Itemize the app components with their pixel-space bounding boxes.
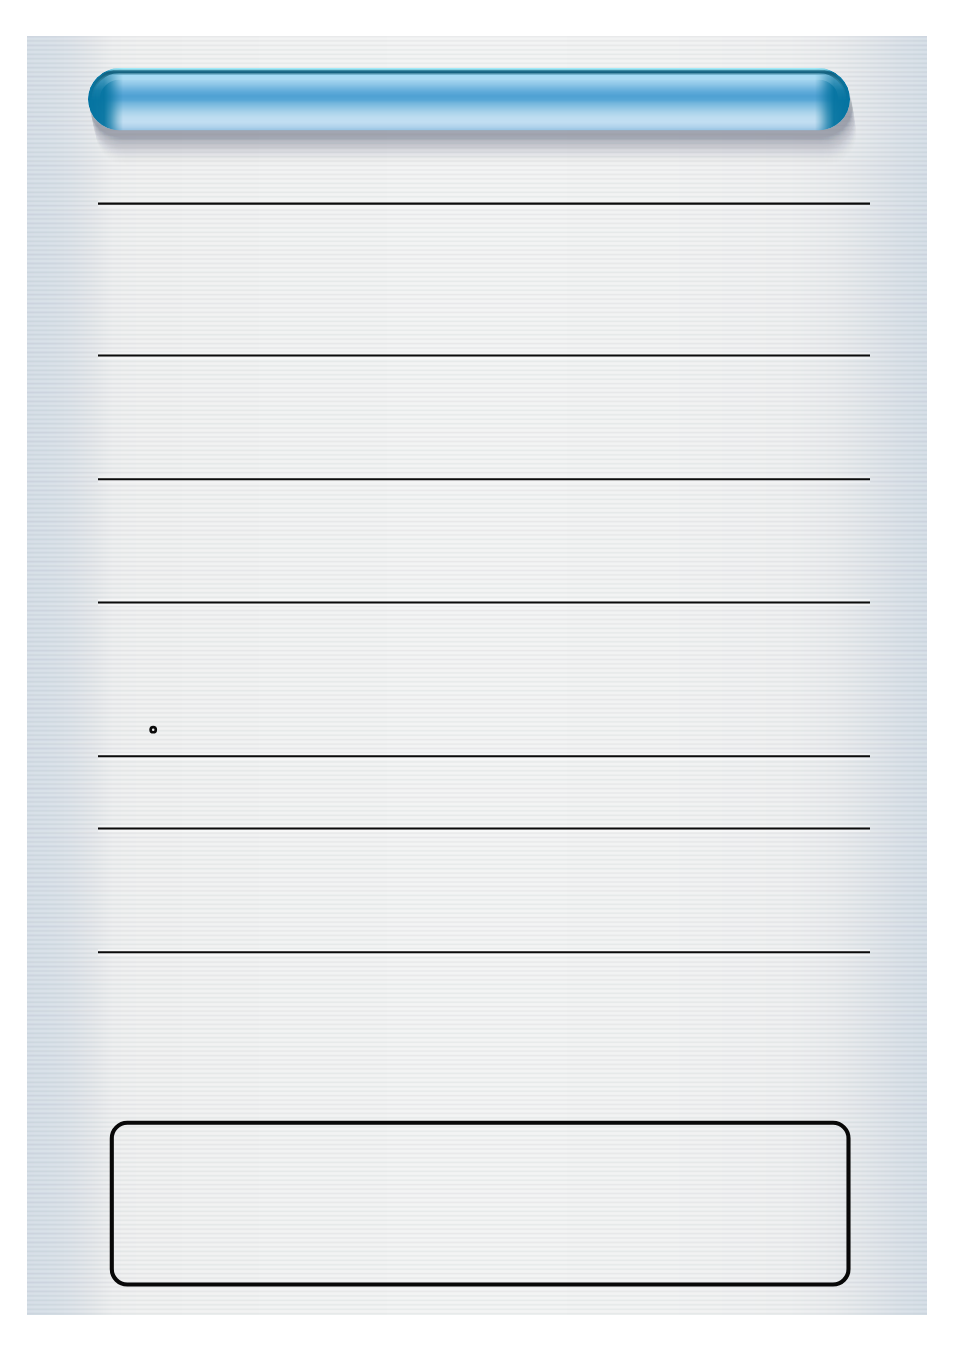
button[interactable]: Row 5 xyxy=(98,756,870,828)
button[interactable]: Row 4 xyxy=(98,602,870,756)
button[interactable]: Row 6 xyxy=(98,828,870,952)
button[interactable]: Header bar xyxy=(88,68,850,131)
button[interactable]: Row 3 xyxy=(98,479,870,602)
button[interactable]: Row 2 xyxy=(98,355,870,479)
button[interactable]: Row 7 xyxy=(98,952,870,1100)
button[interactable]: Row 1 xyxy=(98,204,870,356)
button[interactable]: Note box xyxy=(112,1123,849,1285)
